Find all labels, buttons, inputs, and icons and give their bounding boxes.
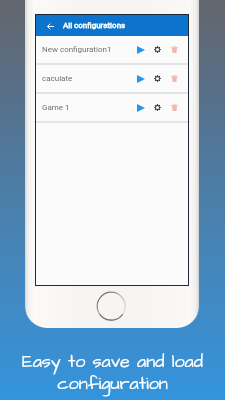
staticText: Game 1 xyxy=(42,103,134,112)
button[interactable]: Settings xyxy=(151,101,164,114)
staticText: Easy to save and load configuration xyxy=(0,349,225,396)
button[interactable]: Game 1 xyxy=(36,94,188,121)
button[interactable]: New configuration1 xyxy=(36,36,188,63)
button[interactable]: Run xyxy=(134,72,147,85)
button[interactable]: Settings xyxy=(151,72,164,85)
staticText: New configuration1 xyxy=(42,45,134,54)
button[interactable]: caculate xyxy=(36,65,188,92)
staticText: caculate xyxy=(42,74,134,83)
button[interactable]: Back xyxy=(42,18,58,34)
button[interactable]: Delete xyxy=(168,43,181,56)
button[interactable]: Run xyxy=(134,43,147,56)
button[interactable]: Delete xyxy=(168,72,181,85)
button[interactable]: Settings xyxy=(151,43,164,56)
button[interactable]: Run xyxy=(134,101,147,114)
staticText: All configurations xyxy=(63,21,126,30)
button[interactable]: Delete xyxy=(168,101,181,114)
